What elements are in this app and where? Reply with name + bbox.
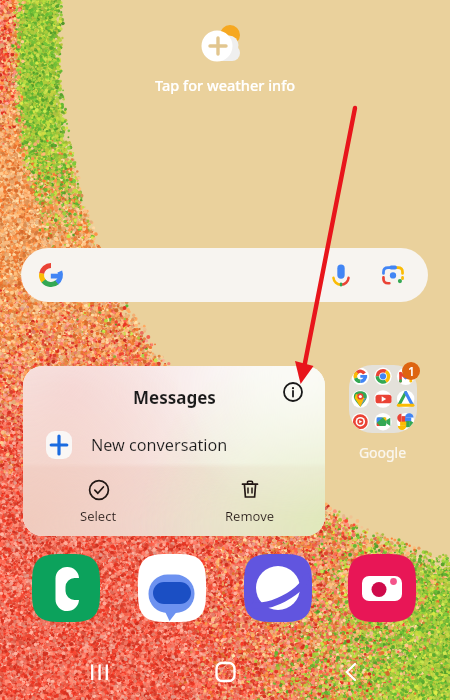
button[interactable]: Recents — [72, 652, 112, 692]
staticText: Remove — [225, 507, 275, 525]
staticText: Tap for weather info — [155, 75, 296, 95]
staticText: 1 — [408, 363, 415, 379]
button[interactable]: Internet — [244, 554, 312, 622]
button[interactable]: Remove — [174, 469, 325, 536]
staticText: Select — [80, 507, 117, 525]
staticText: Google — [340, 443, 425, 462]
button[interactable]: Voice search — [21, 248, 428, 302]
button[interactable]: New conversation — [23, 422, 325, 468]
button[interactable]: Messages — [138, 554, 206, 622]
button[interactable]: Phone — [32, 554, 100, 622]
other: Google Lens — [380, 262, 406, 288]
staticText: Messages — [133, 386, 216, 409]
staticText: New conversation — [91, 434, 228, 456]
button[interactable]: Select — [23, 469, 174, 536]
other: App info — [282, 381, 304, 403]
button[interactable]: Back — [327, 652, 367, 692]
button[interactable]: Tap for weather info — [135, 18, 315, 98]
button[interactable]: Home — [205, 652, 245, 692]
other: Voice search — [328, 262, 354, 288]
button[interactable]: 1 — [340, 360, 432, 465]
button[interactable]: Camera — [348, 554, 416, 622]
